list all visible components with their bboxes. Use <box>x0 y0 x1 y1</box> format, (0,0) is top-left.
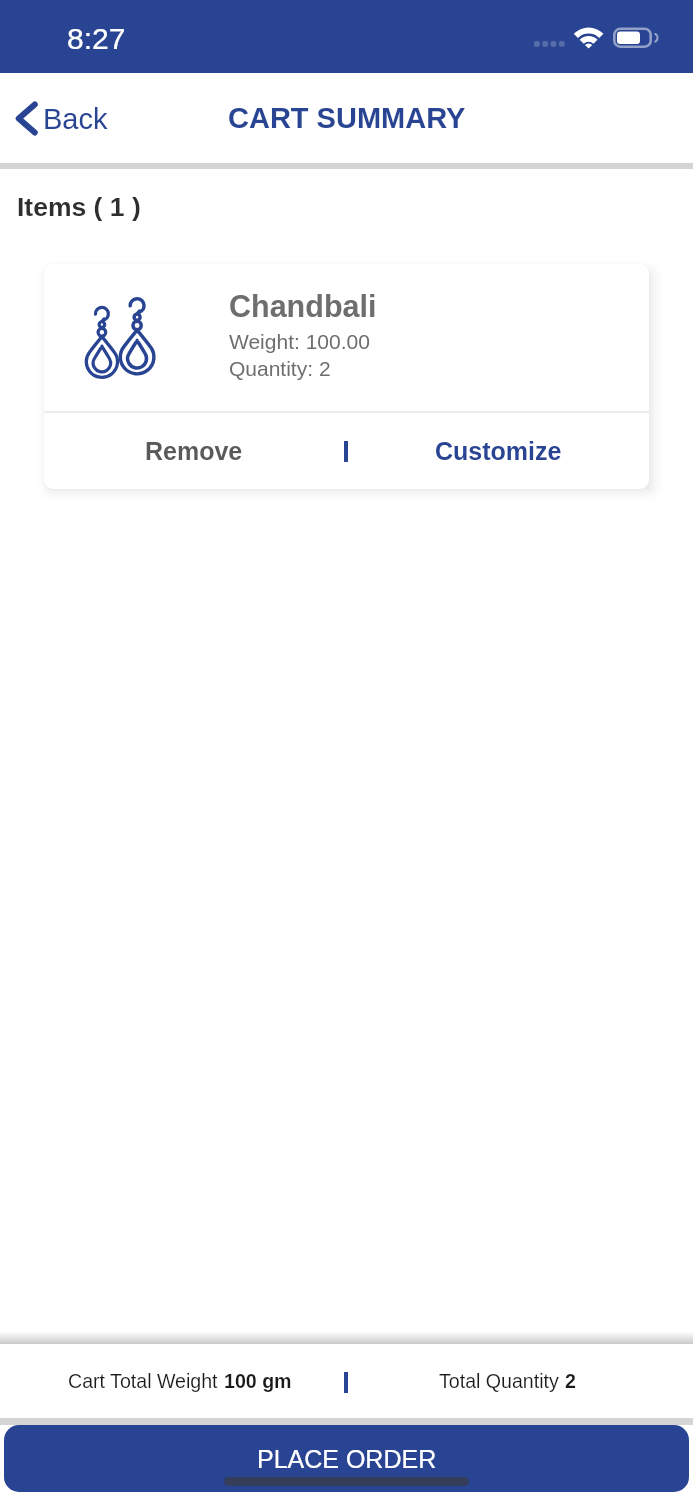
staticText: Cart Total Weight <box>68 1370 224 1392</box>
button[interactable]: Chandbali <box>44 264 649 411</box>
staticText: Chandbali <box>229 289 377 323</box>
staticText: 100 gm <box>224 1370 292 1392</box>
staticText: Back <box>43 103 108 135</box>
staticText: 2 <box>565 1370 576 1392</box>
staticText: Quantity: 2 <box>229 357 331 380</box>
staticText: 8:27 <box>67 22 126 56</box>
staticText: PLACE ORDER <box>257 1445 437 1473</box>
staticText: Remove <box>145 437 243 465</box>
button[interactable]: Customize <box>348 413 649 489</box>
button[interactable]: Back <box>0 93 122 144</box>
staticText: CART SUMMARY <box>228 102 466 134</box>
button[interactable]: Remove <box>44 413 344 489</box>
staticText: Total Quantity <box>439 1370 565 1392</box>
staticText: Customize <box>435 437 562 465</box>
staticText: Items ( 1 ) <box>17 192 141 222</box>
staticText: Weight: 100.00 <box>229 330 370 353</box>
button[interactable]: PLACE ORDER <box>4 1425 689 1492</box>
